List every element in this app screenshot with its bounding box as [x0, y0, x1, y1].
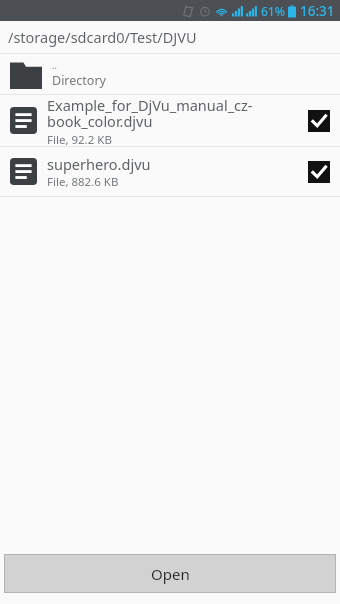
button[interactable]: Selected	[308, 161, 330, 183]
staticText: superhero.djvu	[47, 154, 151, 174]
button[interactable]: ..	[0, 54, 340, 94]
staticText: /storage/sdcard0/Test/DJVU	[8, 27, 197, 47]
button[interactable]: Open	[5, 555, 335, 592]
staticText: 61%	[261, 3, 285, 19]
staticText: 16:31	[300, 2, 335, 20]
button[interactable]: Example_for_DjVu_manual_cz- book_color.d…	[0, 95, 340, 146]
button[interactable]: superhero.djvu	[0, 147, 340, 196]
button[interactable]: Selected	[308, 110, 330, 132]
staticText: Directory	[52, 72, 106, 89]
staticText: File, 882.6 KB	[47, 174, 119, 190]
staticText: ..	[52, 59, 57, 71]
staticText: Example_for_DjVu_manual_cz- book_color.d…	[47, 95, 253, 132]
staticText: Open	[151, 564, 190, 584]
staticText: File, 92.2 KB	[47, 132, 112, 146]
